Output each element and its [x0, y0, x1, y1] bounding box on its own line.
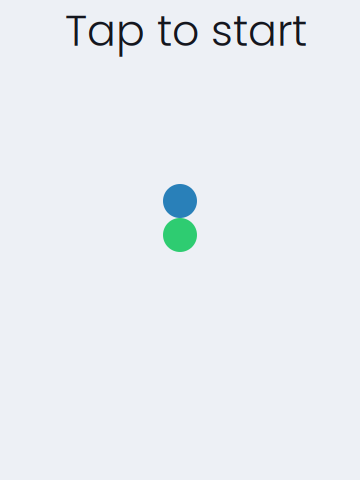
staticText: Tap to start — [65, 1, 307, 61]
button[interactable]: Tap to start — [0, 0, 360, 480]
